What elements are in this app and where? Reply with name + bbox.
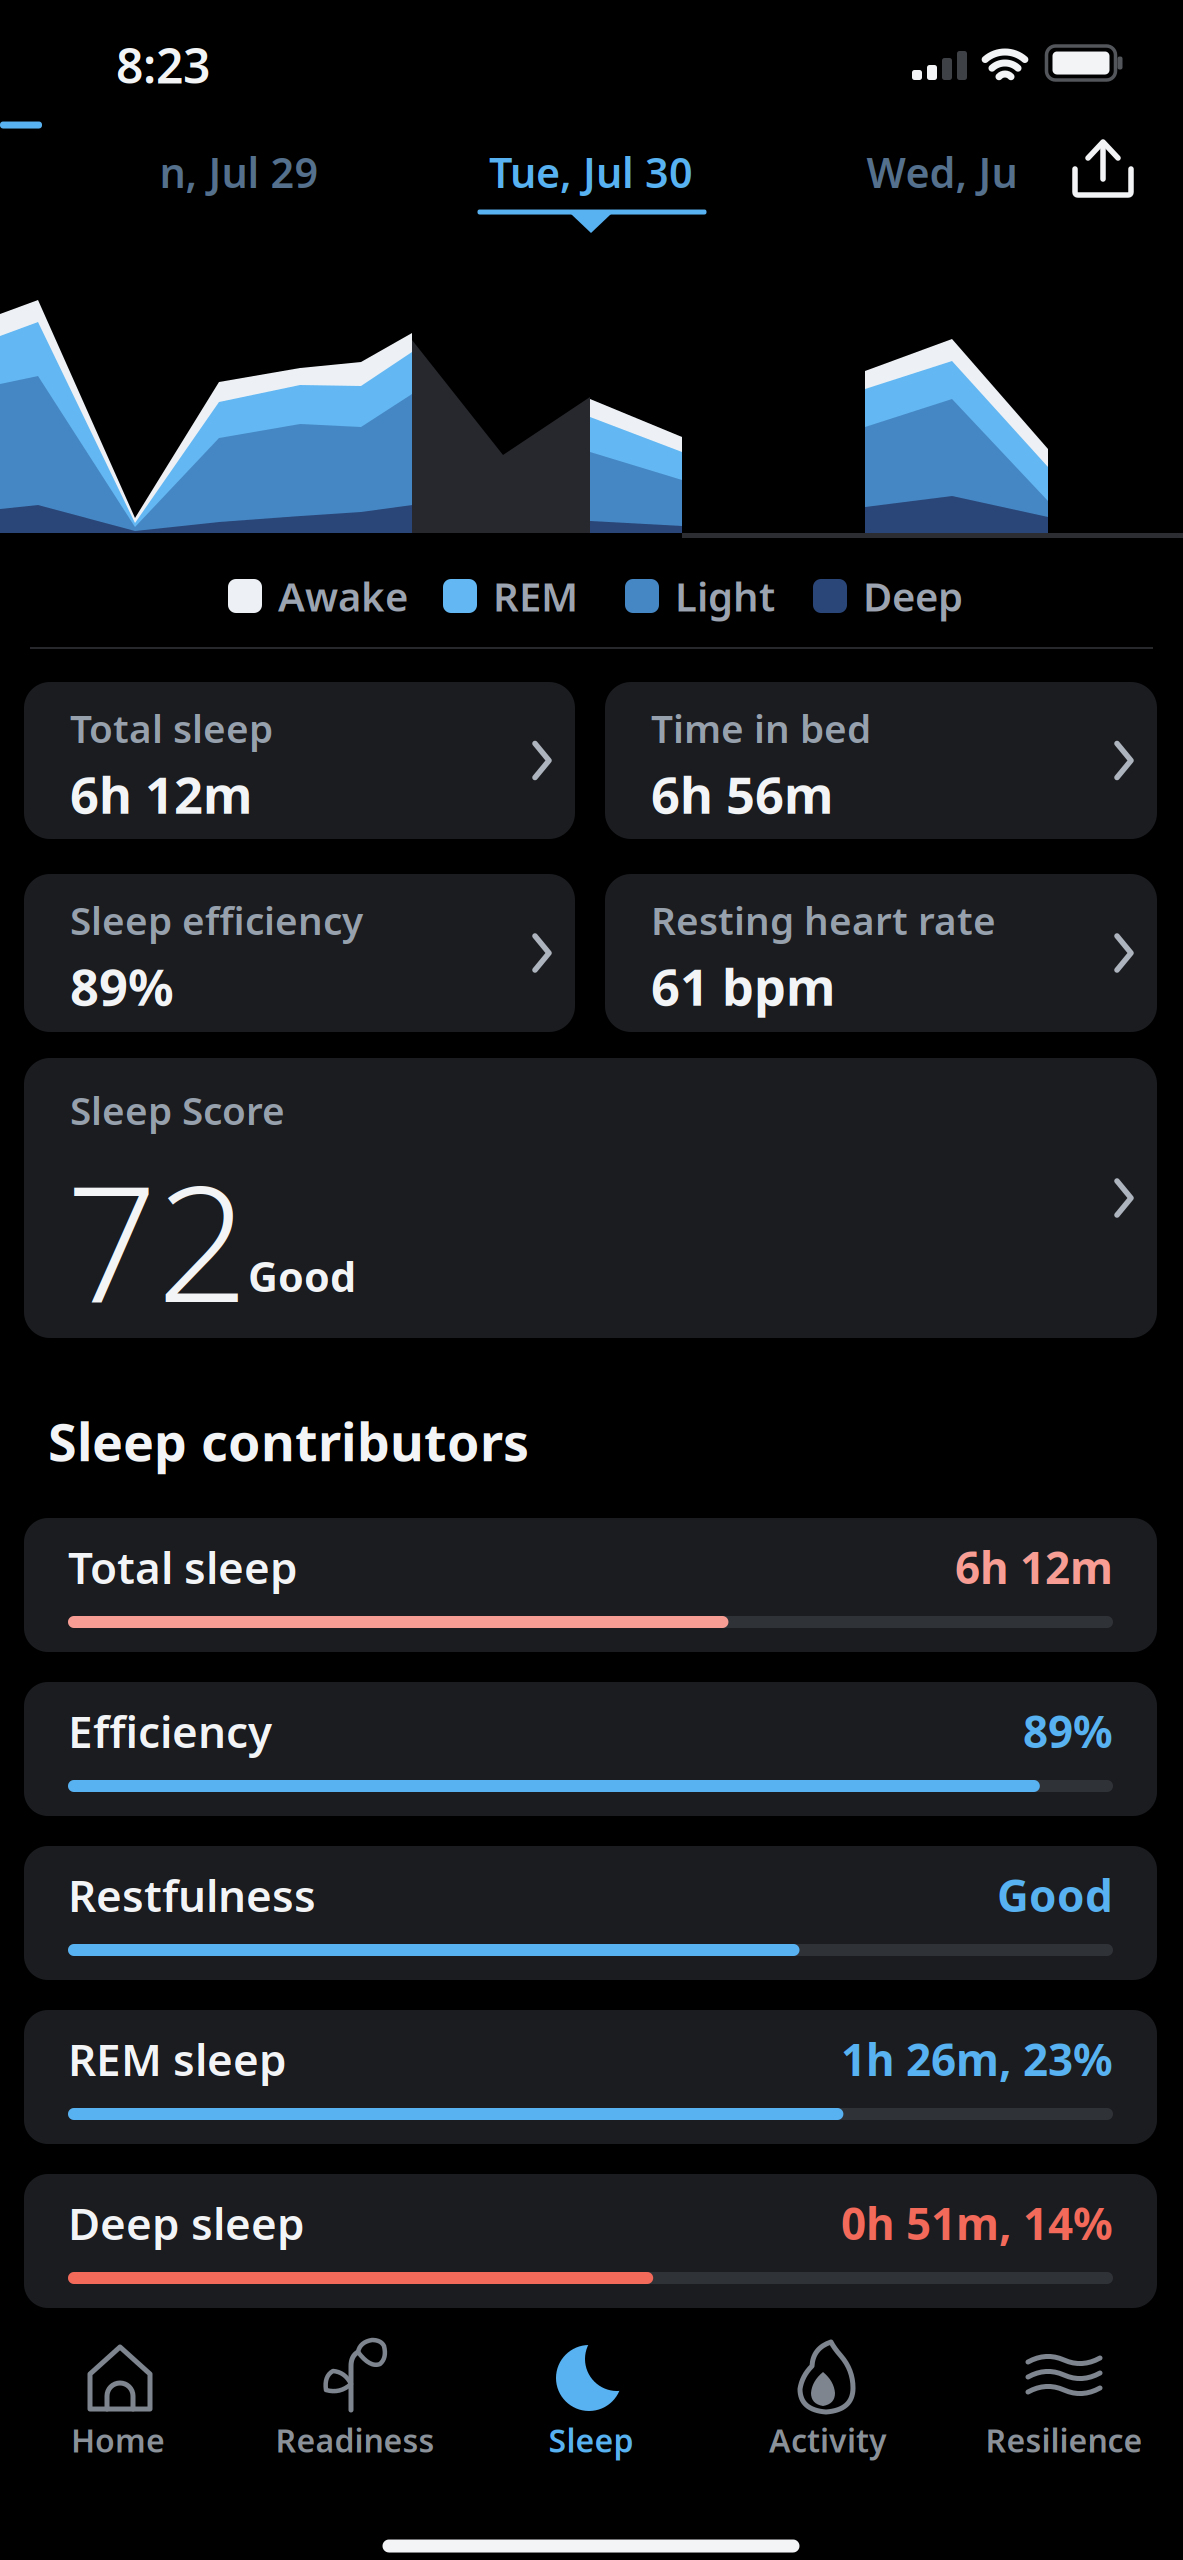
staticText: 6h 12m	[955, 1538, 1113, 1596]
staticText: Total sleep	[68, 1538, 298, 1596]
staticText: Readiness	[275, 2419, 434, 2461]
staticText: 89%	[70, 952, 174, 1020]
staticText: Tue, Jul 30	[489, 145, 693, 199]
staticText: Home	[71, 2419, 165, 2461]
staticText: Wed, Ju	[866, 145, 1017, 199]
staticText: Restfulness	[68, 1866, 316, 1924]
staticText: REM sleep	[68, 2030, 287, 2088]
staticText: Resilience	[985, 2419, 1142, 2461]
staticText: 6h 12m	[70, 760, 252, 828]
staticText: 89%	[1023, 1702, 1113, 1760]
staticText: 6h 56m	[651, 760, 833, 828]
staticText: Good	[248, 1249, 356, 1303]
staticText: Efficiency	[68, 1702, 272, 1760]
staticText: n, Jul 29	[159, 145, 318, 199]
staticText: Awake	[278, 569, 408, 622]
staticText: REM	[493, 569, 578, 622]
staticText: Activity	[769, 2419, 887, 2461]
staticText: Sleep efficiency	[70, 894, 363, 946]
staticText: Deep sleep	[68, 2194, 305, 2252]
staticText: Deep	[863, 569, 963, 622]
staticText: Sleep Score	[70, 1084, 285, 1136]
staticText: 1h 26m, 23%	[841, 2030, 1113, 2088]
staticText: Sleep	[548, 2419, 633, 2461]
staticText: 0h 51m, 14%	[841, 2194, 1113, 2252]
staticText: 61 bpm	[651, 952, 835, 1020]
staticText: 8:23	[116, 33, 210, 97]
staticText: Time in bed	[651, 702, 871, 754]
staticText: Light	[675, 569, 775, 622]
staticText: Total sleep	[70, 702, 273, 754]
staticText: 72	[66, 1134, 248, 1346]
staticText: Good	[997, 1866, 1113, 1924]
staticText: Resting heart rate	[651, 894, 996, 946]
staticText: Sleep contributors	[48, 1406, 529, 1476]
